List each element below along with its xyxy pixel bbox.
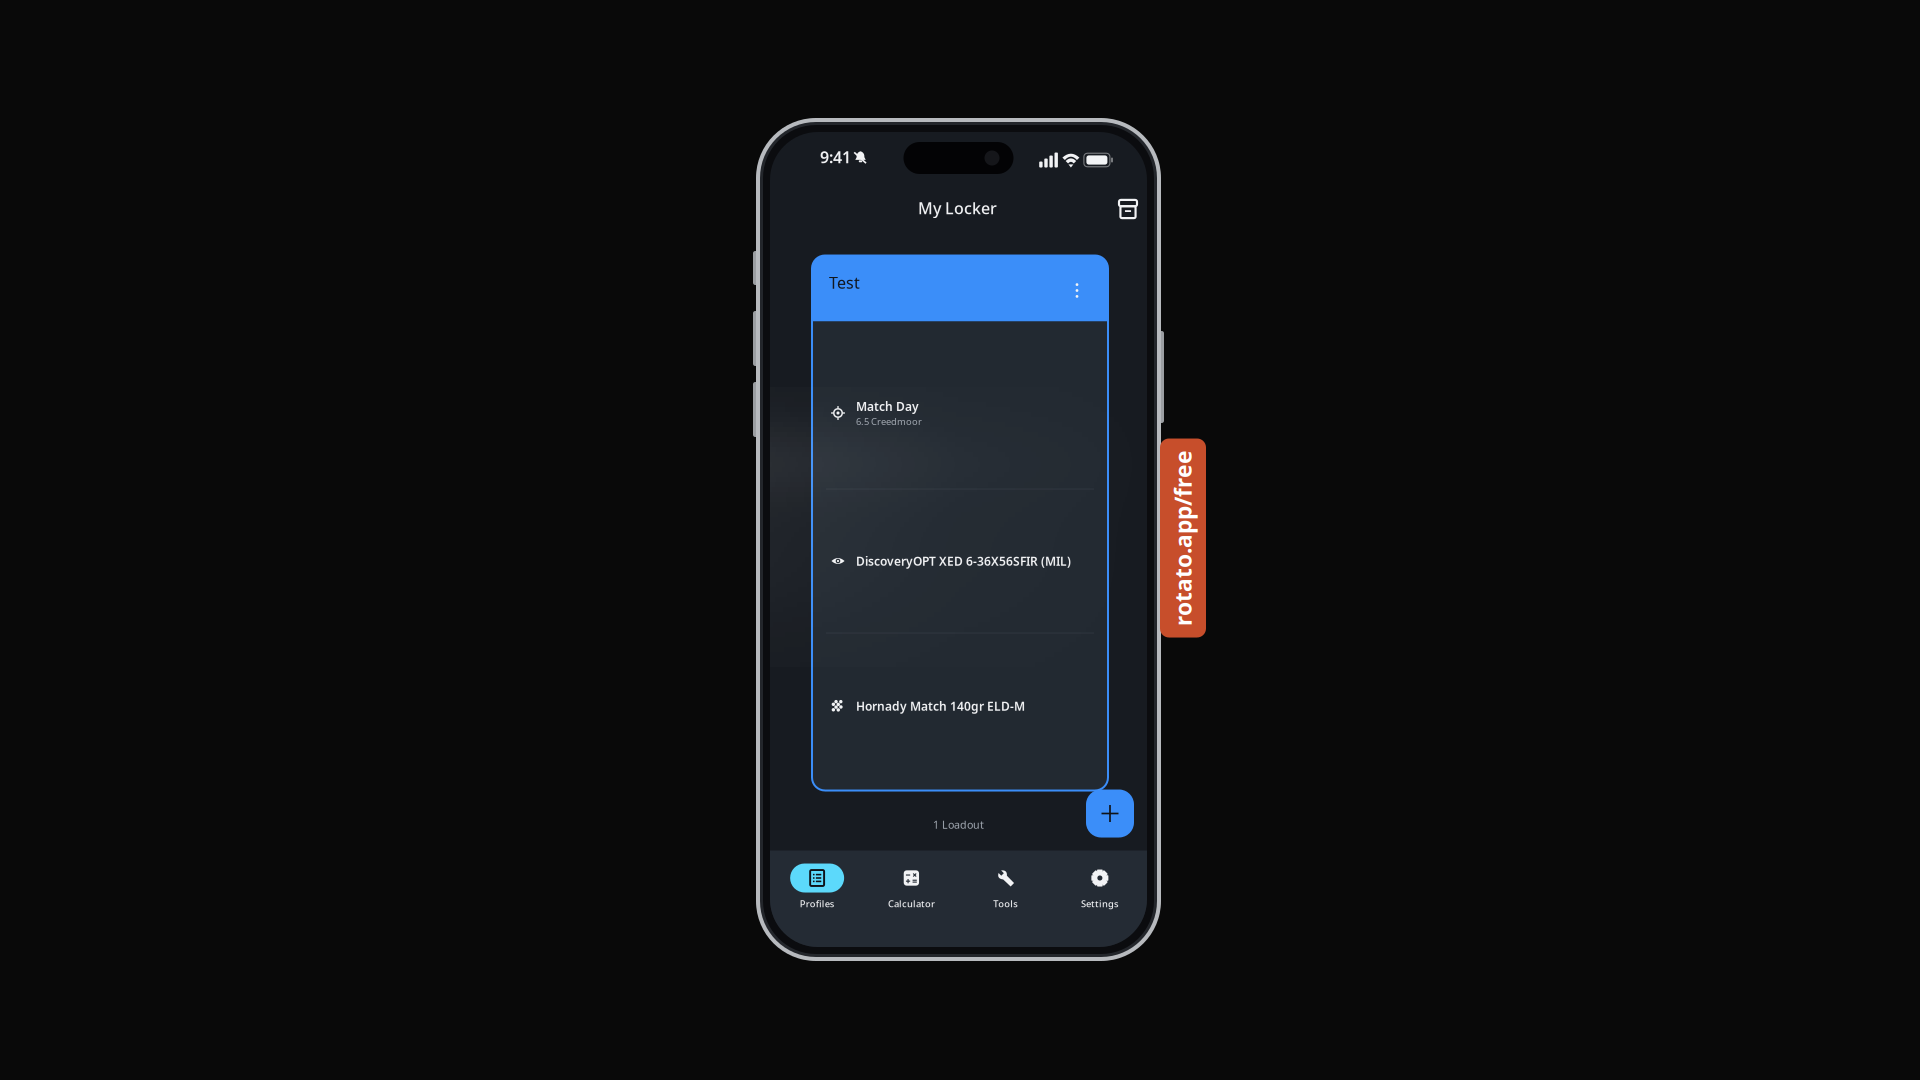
staticText: Match Day (856, 398, 919, 414)
staticText: 9:41 (820, 146, 851, 168)
button[interactable]: Settings (1053, 850, 1147, 923)
button[interactable]: Add loadout (1086, 789, 1134, 837)
staticText: Settings (1081, 897, 1119, 910)
staticText: Profiles (800, 897, 835, 910)
button[interactable]: Tools (958, 850, 1053, 923)
staticText: Test (829, 272, 860, 293)
button[interactable]: Archive (1110, 191, 1146, 227)
staticText: 6.5 Creedmoor (856, 415, 922, 428)
button[interactable]: Test (812, 255, 1108, 790)
staticText: Calculator (888, 897, 935, 910)
button[interactable]: Profiles (770, 850, 864, 923)
staticText: DiscoveryOPT XED 6-36X56SFIR (MIL) (856, 553, 1071, 569)
staticText: rotato.app/free (1095, 523, 1271, 553)
staticText: Hornady Match 140gr ELD-M (856, 698, 1025, 714)
staticText: 1 Loadout (933, 817, 984, 832)
staticText: Tools (993, 897, 1018, 910)
staticText: My Locker (918, 197, 997, 219)
button[interactable]: Calculator (864, 850, 958, 923)
